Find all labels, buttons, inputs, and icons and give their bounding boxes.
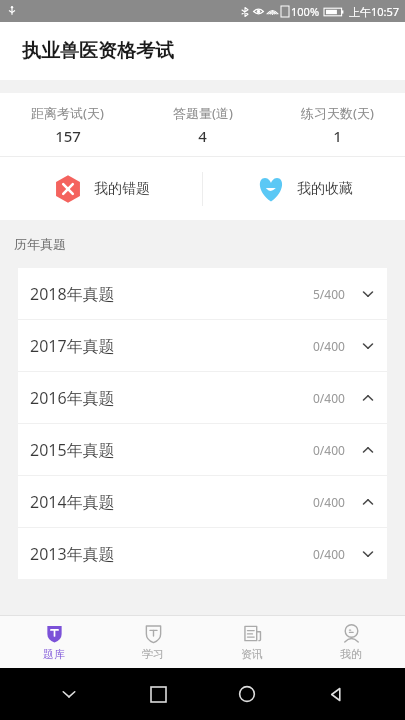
button[interactable]: 我的: [306, 620, 396, 664]
staticText: 练习天数(天): [301, 104, 374, 122]
staticText: 2014年真题: [30, 491, 115, 513]
staticText: 历年真题: [14, 236, 66, 252]
button[interactable]: 我的错题: [43, 168, 160, 210]
staticText: 我的错题: [94, 180, 150, 198]
button[interactable]: 题库: [9, 620, 99, 664]
staticText: 2017年真题: [30, 335, 115, 357]
staticText: 2018年真题: [30, 283, 115, 305]
button[interactable]: Recent apps: [138, 674, 178, 714]
staticText: 题库: [43, 647, 65, 661]
button[interactable]: 2013年真题: [18, 528, 387, 579]
button[interactable]: 2016年真题: [18, 372, 387, 423]
button[interactable]: 2014年真题: [18, 476, 387, 527]
button[interactable]: 我的收藏: [246, 168, 363, 210]
button[interactable]: 2018年真题: [18, 268, 387, 319]
staticText: 4: [198, 126, 207, 146]
staticText: 2013年真题: [30, 543, 115, 565]
staticText: 0/400: [313, 494, 345, 510]
staticText: 0/400: [313, 442, 345, 458]
button[interactable]: 资讯: [207, 620, 297, 664]
staticText: 0/400: [313, 338, 345, 354]
button[interactable]: 2015年真题: [18, 424, 387, 475]
staticText: 距离考试(天): [31, 104, 104, 122]
staticText: 1: [333, 126, 342, 146]
staticText: 2016年真题: [30, 387, 115, 409]
staticText: 我的收藏: [297, 180, 353, 198]
staticText: 学习: [142, 647, 164, 661]
staticText: 答题量(道): [173, 104, 233, 122]
staticText: 上午10:57: [349, 4, 400, 19]
staticText: 100%: [291, 4, 320, 19]
staticText: 5/400: [313, 286, 345, 302]
staticText: 0/400: [313, 546, 345, 562]
staticText: 我的: [340, 647, 362, 661]
staticText: 157: [55, 126, 81, 146]
staticText: 执业兽医资格考试: [22, 39, 174, 63]
staticText: 0/400: [313, 390, 345, 406]
button[interactable]: Back: [316, 674, 356, 714]
button[interactable]: 2017年真题: [18, 320, 387, 371]
staticText: 2015年真题: [30, 439, 115, 461]
staticText: 资讯: [241, 647, 263, 661]
button[interactable]: 学习: [108, 620, 198, 664]
button[interactable]: Hide keyboard: [49, 674, 89, 714]
button[interactable]: Home: [227, 674, 267, 714]
